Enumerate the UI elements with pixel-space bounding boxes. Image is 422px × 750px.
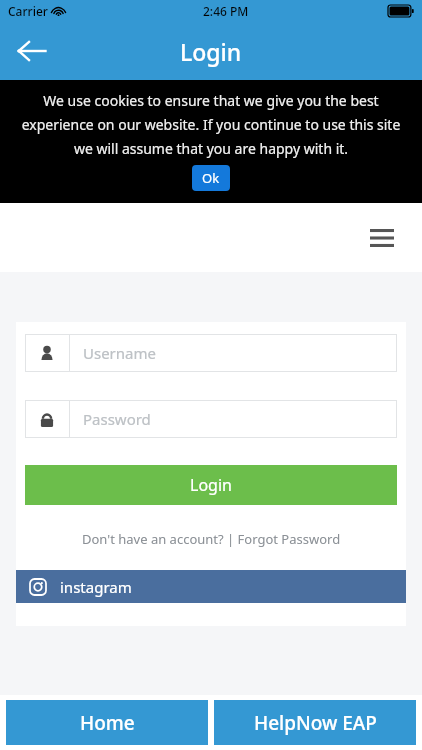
staticText: Ok: [202, 169, 220, 187]
button[interactable]: HelpNow EAP: [214, 700, 416, 745]
button[interactable]: Ok: [192, 165, 230, 191]
button[interactable]: Login: [25, 465, 397, 505]
staticText: HelpNow EAP: [254, 710, 377, 736]
button[interactable]: Back: [8, 27, 56, 75]
button[interactable]: Menu: [362, 218, 402, 258]
staticText: Login: [180, 36, 242, 67]
staticText: Home: [80, 710, 135, 736]
button[interactable]: Don't have an account? | Forgot Password: [82, 530, 341, 548]
staticText: instagram: [60, 577, 132, 597]
button[interactable]: Username: [25, 334, 397, 372]
button[interactable]: instagram: [16, 570, 406, 603]
staticText: 2:46 PM: [203, 3, 249, 19]
staticText: Username: [83, 343, 156, 363]
button[interactable]: Password: [25, 400, 397, 438]
staticText: We use cookies to ensure that we give yo…: [14, 91, 408, 158]
staticText: Login: [190, 474, 232, 496]
staticText: Carrier: [8, 3, 48, 19]
staticText: Password: [83, 409, 151, 429]
button[interactable]: Home: [6, 700, 208, 745]
